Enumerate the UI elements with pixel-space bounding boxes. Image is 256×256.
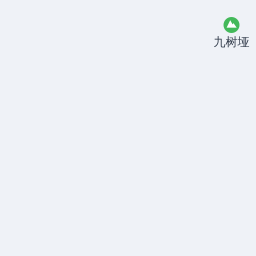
staticText: 九树垭 [213, 35, 249, 49]
button[interactable]: 九树垭 [213, 17, 249, 49]
